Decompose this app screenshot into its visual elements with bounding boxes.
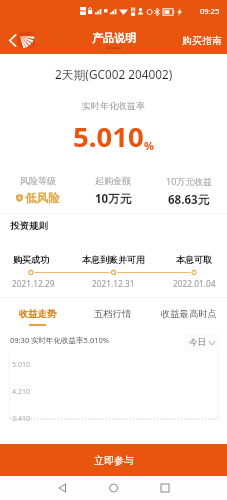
staticText: 收益最高时点 [161,308,217,320]
staticText: 实时年化收益率 [82,100,145,111]
button[interactable]: Back [3,31,21,49]
staticText: 10万元 [95,191,132,207]
staticText: 2021.12.31 [92,278,135,289]
staticText: 起购金额 [95,175,131,186]
button[interactable]: 五档行情 [75,308,151,324]
staticText: 立即参与 [94,454,134,467]
staticText: 5.010 [73,118,144,155]
staticText: 低风险 [25,191,60,205]
staticText: 投资规则 [10,220,48,232]
staticText: 3.410 [12,414,30,424]
staticText: 五档行情 [94,308,132,320]
button[interactable]: Recent apps [151,476,179,500]
staticText: 09:30 实时年化收益率5.010% [10,335,110,345]
button[interactable]: Back [48,476,76,500]
button[interactable]: App logo [18,32,35,48]
staticText: % [144,138,154,153]
staticText: 风险等级 [20,175,56,186]
staticText: 5.010 [12,360,30,370]
staticText: 10万元收益 [166,175,213,187]
button[interactable]: 收益最高时点 [151,308,227,324]
staticText: 2021.12.29 [12,278,55,289]
staticText: 今日 [189,337,206,348]
staticText: 购买指南 [182,34,222,47]
staticText: 产品说明 [92,31,136,45]
staticText: 本息可取 [176,254,212,265]
staticText: 购买成功 [13,254,49,265]
staticText: 68.63元 [168,192,210,208]
staticText: 本息到账并可用 [82,254,145,265]
staticText: 2022.01.04 [173,278,216,289]
button[interactable]: 购买指南 [181,34,223,47]
staticText: 2天期(GC002 204002) [55,66,173,82]
button[interactable]: Home [100,476,128,500]
button[interactable]: 立即参与 [0,444,227,476]
staticText: 4.210 [12,387,30,397]
button[interactable]: 收益走势 [0,308,75,326]
staticText: 09:25 [200,6,220,16]
staticText: 收益走势 [19,308,57,320]
button[interactable]: 今日 [189,337,215,348]
